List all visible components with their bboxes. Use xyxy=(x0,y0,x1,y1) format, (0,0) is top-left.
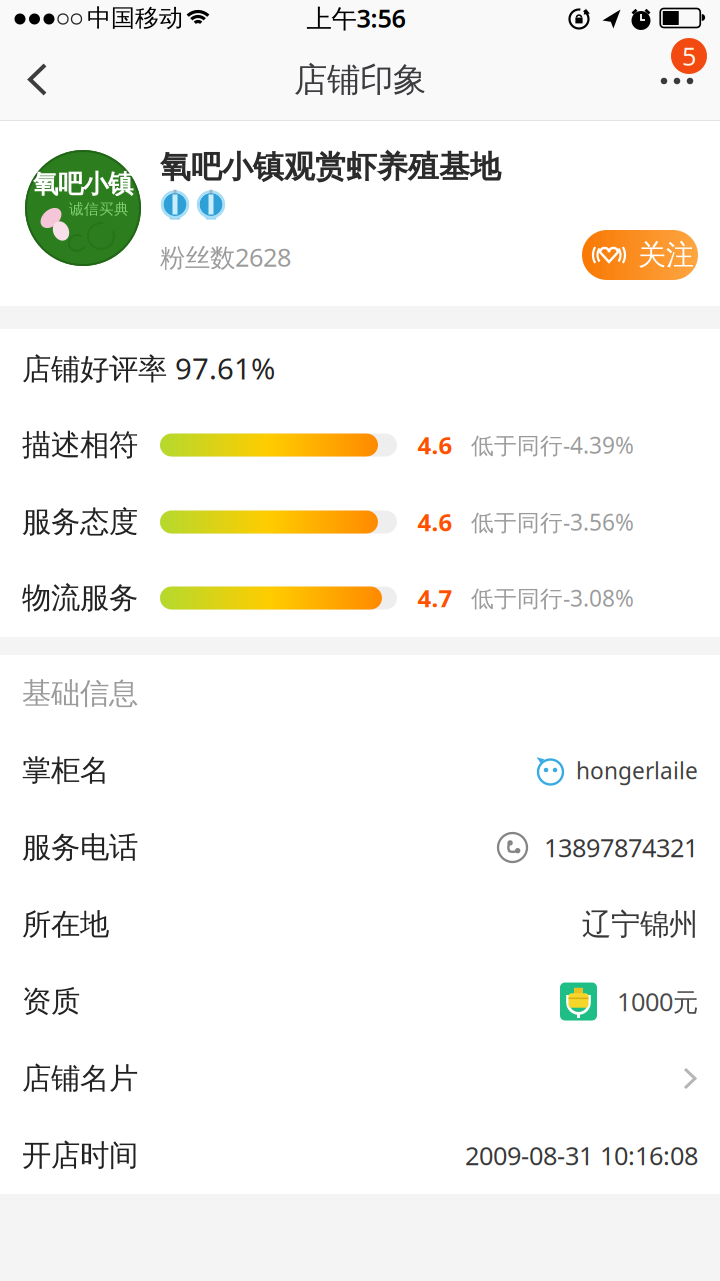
staticText: 粉丝数2628 xyxy=(160,240,291,274)
button[interactable]: 关注 xyxy=(582,230,698,280)
button[interactable]: 掌柜名 xyxy=(0,732,720,809)
staticText: 资质 xyxy=(22,983,80,1019)
staticText: 开店时间 xyxy=(22,1137,138,1173)
staticText: 店铺印象 xyxy=(294,59,426,100)
button[interactable]: 服务电话 xyxy=(0,809,720,886)
staticText: 4.6 xyxy=(417,506,452,538)
staticText: 1000元 xyxy=(617,985,698,1018)
staticText: 4.6 xyxy=(417,429,452,461)
staticText: 13897874321 xyxy=(544,831,698,864)
staticText: 中国移动 xyxy=(87,3,183,33)
staticText: 氧吧小镇 xyxy=(33,168,133,199)
staticText: 物流服务 xyxy=(22,580,138,616)
staticText: 关注 xyxy=(638,238,694,272)
staticText: 低于同行-3.56% xyxy=(471,507,634,537)
staticText: 2009-08-31 10:16:08 xyxy=(465,1139,698,1172)
staticText: 基础信息 xyxy=(22,675,138,711)
staticText: 服务态度 xyxy=(22,504,138,540)
staticText: 辽宁锦州 xyxy=(582,906,698,942)
staticText: 低于同行-4.39% xyxy=(471,430,634,460)
staticText: 服务电话 xyxy=(22,829,138,865)
staticText: 低于同行-3.08% xyxy=(471,583,634,613)
staticText: 所在地 xyxy=(22,906,109,942)
button[interactable]: Back xyxy=(10,49,66,111)
staticText: 上午3:56 xyxy=(306,1,405,35)
button[interactable]: 店铺名片 xyxy=(0,1040,720,1117)
staticText: 诚信买典 xyxy=(69,200,129,218)
staticText: 掌柜名 xyxy=(22,752,109,788)
staticText: hongerlaile xyxy=(576,755,698,785)
staticText: 氧吧小镇观赏虾养殖基地 xyxy=(160,148,501,186)
staticText: 4.7 xyxy=(417,582,452,614)
staticText: 店铺名片 xyxy=(22,1060,138,1096)
staticText: 5 xyxy=(682,39,696,73)
staticText: 描述相符 xyxy=(22,427,138,463)
staticText: 店铺好评率 97.61% xyxy=(22,348,275,387)
button[interactable]: More xyxy=(649,62,705,100)
